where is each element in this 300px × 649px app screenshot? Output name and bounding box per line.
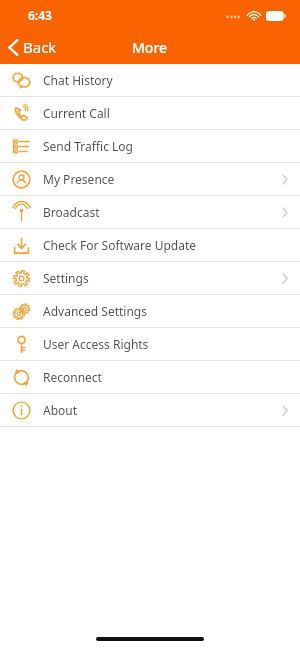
- button[interactable]: About: [0, 394, 300, 426]
- staticText: Current Call: [43, 105, 288, 121]
- button[interactable]: Back: [0, 30, 67, 64]
- button[interactable]: Check For Software Update: [0, 229, 300, 261]
- button[interactable]: Chat History: [0, 64, 300, 96]
- staticText: 6:43: [28, 7, 52, 23]
- staticText: About: [43, 402, 282, 418]
- button[interactable]: Send Traffic Log: [0, 130, 300, 162]
- button[interactable]: Settings: [0, 262, 300, 294]
- staticText: Reconnect: [43, 369, 288, 385]
- button[interactable]: Reconnect: [0, 361, 300, 393]
- staticText: Check For Software Update: [43, 237, 288, 253]
- staticText: Broadcast: [43, 204, 282, 220]
- staticText: Settings: [43, 270, 282, 286]
- staticText: Chat History: [43, 72, 288, 88]
- button[interactable]: User Access Rights: [0, 328, 300, 360]
- button[interactable]: Current Call: [0, 97, 300, 129]
- staticText: More: [132, 38, 168, 57]
- staticText: Back: [23, 37, 57, 57]
- button[interactable]: Advanced Settings: [0, 295, 300, 327]
- button[interactable]: My Presence: [0, 163, 300, 195]
- staticText: Send Traffic Log: [43, 138, 288, 154]
- staticText: Advanced Settings: [43, 303, 288, 319]
- button[interactable]: Broadcast: [0, 196, 300, 228]
- staticText: My Presence: [43, 171, 282, 187]
- staticText: User Access Rights: [43, 336, 288, 352]
